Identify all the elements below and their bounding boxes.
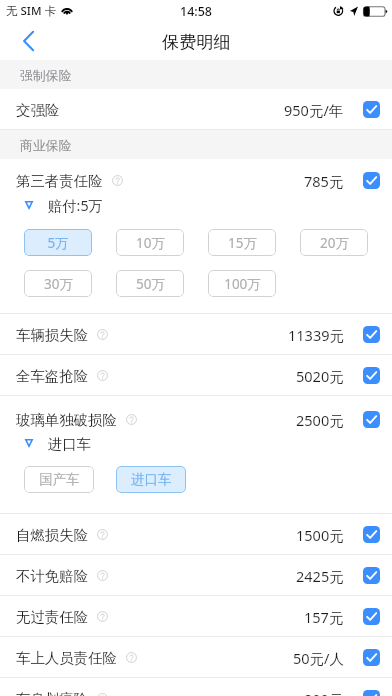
button[interactable]: 返回	[0, 22, 48, 60]
staticText: 950元/年	[284, 100, 344, 120]
staticText: 5020元	[296, 366, 344, 386]
button[interactable]: 选择	[363, 172, 380, 189]
staticText: 车辆损失险	[16, 326, 88, 344]
staticText: 无 SIM 卡	[6, 3, 56, 19]
button[interactable]: 100万	[208, 270, 276, 297]
staticText: 10万	[136, 234, 165, 252]
button[interactable]: 国产车	[24, 466, 94, 493]
button[interactable]: 10万	[116, 229, 184, 256]
button[interactable]: 选择	[363, 526, 380, 543]
button[interactable]: 选择	[363, 649, 380, 666]
staticText: 自燃损失险	[16, 526, 88, 544]
staticText: 15万	[228, 234, 257, 252]
staticText: 进口车	[48, 435, 91, 453]
staticText: 800元	[304, 689, 344, 696]
staticText: 50万	[136, 275, 165, 293]
staticText: 14:58	[180, 3, 213, 20]
button[interactable]: 选择	[363, 690, 380, 696]
staticText: 保费明细	[162, 31, 231, 53]
button[interactable]: 选择	[363, 567, 380, 584]
staticText: 无过责任险	[16, 608, 88, 626]
button[interactable]: 15万	[208, 229, 276, 256]
button[interactable]: 车身划痕险	[0, 678, 392, 696]
staticText: 2425元	[296, 566, 344, 586]
staticText: 50元/人	[293, 648, 344, 668]
button[interactable]: 选择	[363, 367, 380, 384]
staticText: 100万	[224, 275, 261, 293]
staticText: 国产车	[39, 471, 80, 488]
button[interactable]: 选择	[363, 101, 380, 118]
button[interactable]: 选择	[363, 411, 380, 428]
staticText: 不计免赔险	[16, 567, 88, 585]
button[interactable]: 30万	[24, 270, 92, 297]
button[interactable]: 50万	[116, 270, 184, 297]
staticText: 11339元	[288, 325, 344, 345]
staticText: 进口车	[131, 471, 172, 488]
button[interactable]: 进口车	[116, 466, 186, 493]
staticText: 车身划痕险	[16, 690, 88, 696]
button[interactable]: 选择	[363, 608, 380, 625]
button[interactable]: 20万	[300, 229, 368, 256]
staticText: 车上人员责任险	[16, 649, 117, 667]
button[interactable]: 车辆损失险	[0, 314, 392, 355]
staticText: 30万	[44, 275, 73, 293]
button[interactable]: 全车盗抢险	[0, 355, 392, 396]
staticText: 赔付:5万	[48, 196, 103, 216]
staticText: 157元	[304, 607, 344, 627]
staticText: 2500元	[296, 410, 344, 430]
button[interactable]: 5万	[24, 229, 92, 256]
button[interactable]: 交强险	[0, 89, 392, 130]
staticText: 强制保险	[20, 68, 72, 84]
staticText: 20万	[320, 234, 349, 252]
staticText: 第三者责任险	[16, 172, 103, 190]
button[interactable]: 无过责任险	[0, 596, 392, 637]
button[interactable]: 自燃损失险	[0, 514, 392, 555]
staticText: 5万	[47, 234, 69, 252]
button[interactable]: 选择	[363, 326, 380, 343]
staticText: 交强险	[16, 101, 60, 119]
button[interactable]: 车上人员责任险	[0, 637, 392, 678]
staticText: 1500元	[296, 525, 344, 545]
staticText: 商业保险	[20, 138, 72, 154]
staticText: 全车盗抢险	[16, 367, 88, 385]
staticText: 785元	[304, 171, 344, 191]
staticText: 玻璃单独破损险	[16, 411, 117, 429]
button[interactable]: 不计免赔险	[0, 555, 392, 596]
